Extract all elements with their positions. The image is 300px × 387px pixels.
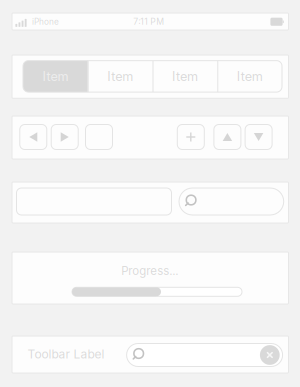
button[interactable]: Previous <box>20 124 47 149</box>
staticText: Item <box>107 69 133 84</box>
button[interactable]: Item <box>23 61 88 92</box>
button[interactable]: Item <box>88 61 153 92</box>
button[interactable]: Add <box>177 124 204 149</box>
button[interactable]: Decrease <box>245 124 272 149</box>
button[interactable]: Clear <box>260 345 280 365</box>
staticText: iPhone <box>32 17 59 27</box>
staticText: Item <box>237 69 263 84</box>
button[interactable]: Item <box>152 61 217 92</box>
button[interactable]: Play <box>51 124 78 149</box>
button[interactable]: Search <box>179 188 284 215</box>
staticText: Progress... <box>121 264 178 278</box>
staticText: 7:11 PM <box>133 16 164 27</box>
button[interactable]: Increase <box>214 124 241 149</box>
button[interactable]: Text field <box>16 188 171 215</box>
button[interactable]: Item <box>217 61 282 92</box>
button[interactable]: Stop <box>85 124 112 149</box>
staticText: Item <box>42 69 68 84</box>
staticText: Toolbar Label <box>27 347 104 361</box>
staticText: Item <box>172 69 198 84</box>
